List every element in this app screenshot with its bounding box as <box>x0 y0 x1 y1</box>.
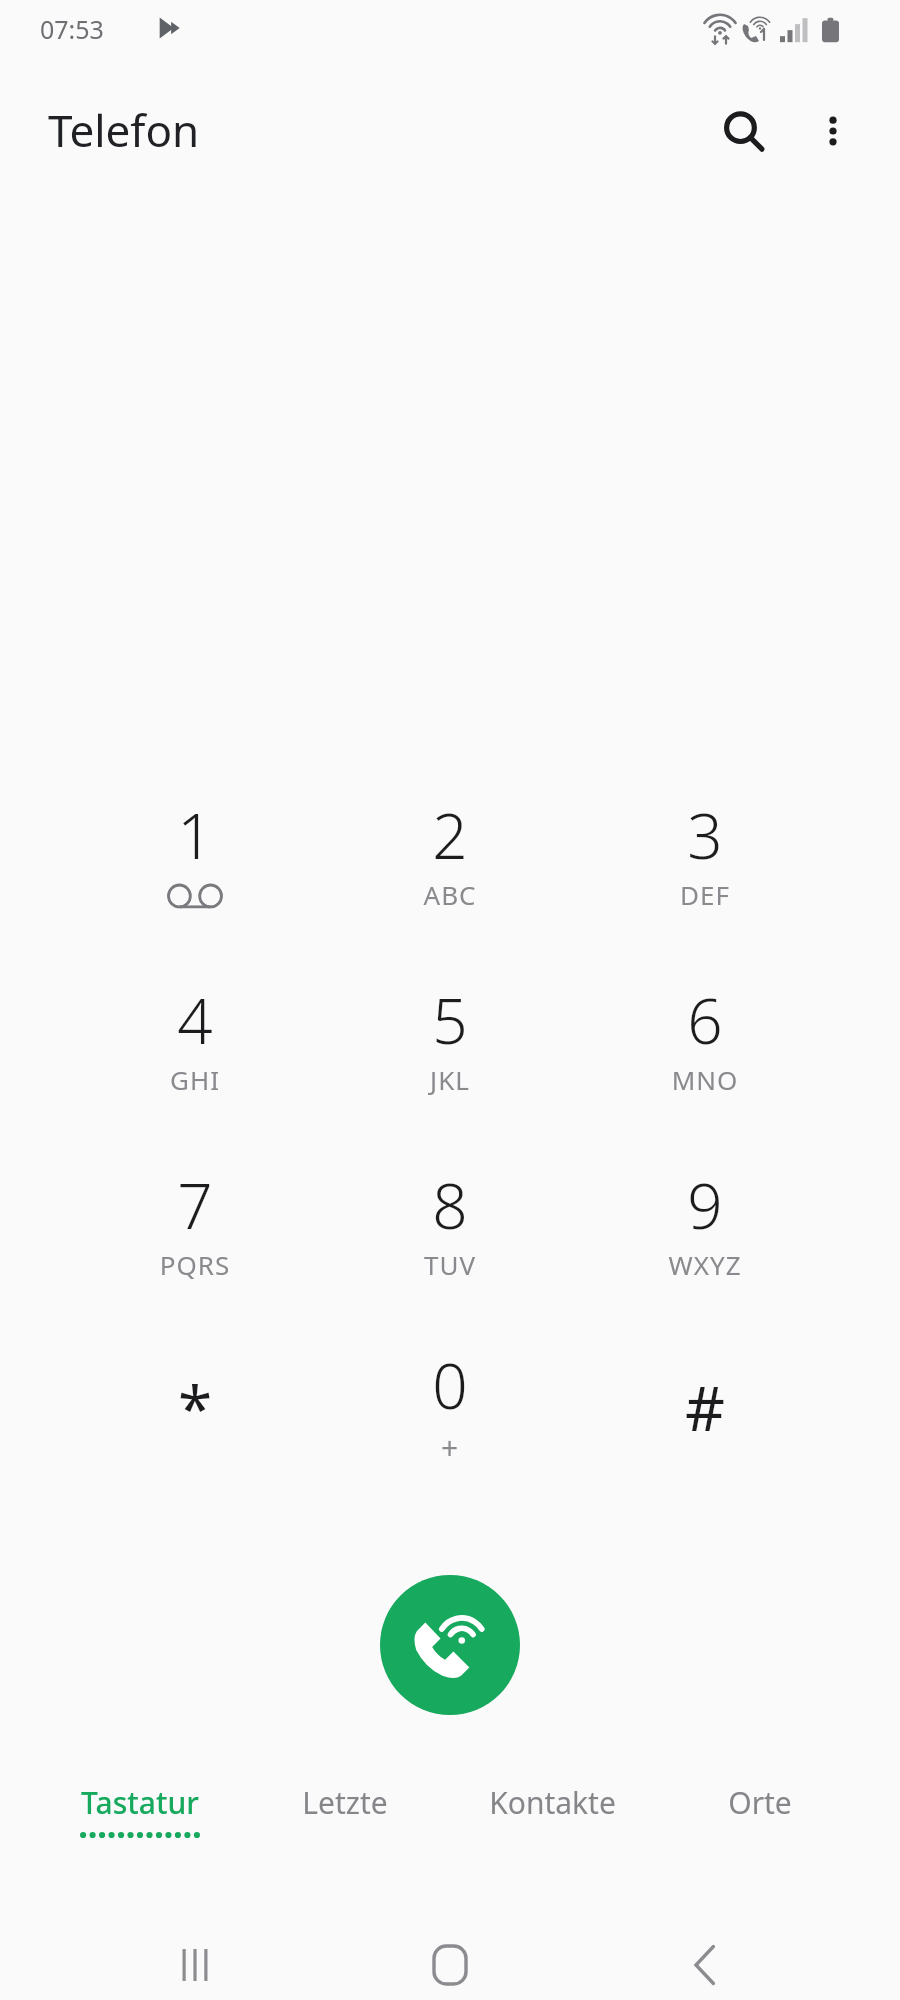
staticText: 3 <box>605 793 805 877</box>
button[interactable]: 4 <box>95 978 295 1148</box>
staticText: # <box>605 1365 805 1449</box>
staticText: Kontakte <box>489 1782 616 1823</box>
button[interactable]: 7 <box>95 1163 295 1333</box>
staticText: MNO <box>605 1062 805 1097</box>
staticText: TUV <box>350 1247 550 1282</box>
staticText: ABC <box>350 877 550 912</box>
button[interactable]: Orte <box>660 1782 860 1874</box>
button[interactable]: Anrufen <box>380 1575 520 1715</box>
staticText: 6 <box>605 978 805 1062</box>
button[interactable]: # <box>605 1343 805 1513</box>
button[interactable]: Kontakte <box>452 1782 652 1874</box>
button[interactable]: Letzte <box>245 1782 445 1874</box>
staticText: 4 <box>95 978 295 1062</box>
staticText: WXYZ <box>605 1247 805 1282</box>
button[interactable]: 3 <box>605 793 805 963</box>
button[interactable]: Tastatur <box>40 1782 240 1874</box>
staticText: 1 <box>95 793 295 877</box>
staticText: 9 <box>605 1163 805 1247</box>
staticText: GHI <box>95 1062 295 1097</box>
staticText: Letzte <box>302 1782 388 1823</box>
staticText: * <box>95 1365 295 1449</box>
button[interactable]: 5 <box>350 978 550 1148</box>
button[interactable]: Suchen <box>700 88 786 174</box>
staticText: 7 <box>95 1163 295 1247</box>
staticText: 2 <box>350 793 550 877</box>
staticText: 07:53 <box>40 12 104 46</box>
button[interactable]: 9 <box>605 1163 805 1333</box>
button[interactable]: Weitere Optionen <box>790 88 876 174</box>
button[interactable]: Zurück <box>650 1910 760 2000</box>
button[interactable]: Letzte Apps <box>140 1910 250 2000</box>
staticText: JKL <box>350 1062 550 1097</box>
staticText: Telefon <box>48 100 200 160</box>
staticText: PQRS <box>95 1247 295 1282</box>
button[interactable]: 0 <box>350 1343 550 1513</box>
button[interactable]: Startbildschirm <box>395 1910 505 2000</box>
staticText: Orte <box>728 1782 792 1823</box>
staticText: 0 <box>350 1343 550 1427</box>
staticText: Tastatur <box>81 1782 199 1823</box>
staticText: 8 <box>350 1163 550 1247</box>
button[interactable]: 1 <box>95 793 295 963</box>
button[interactable]: * <box>95 1343 295 1513</box>
staticText: 5 <box>350 978 550 1062</box>
button[interactable]: 8 <box>350 1163 550 1333</box>
button[interactable]: 6 <box>605 978 805 1148</box>
button[interactable]: 2 <box>350 793 550 963</box>
staticText: + <box>350 1427 550 1468</box>
staticText: DEF <box>605 877 805 912</box>
